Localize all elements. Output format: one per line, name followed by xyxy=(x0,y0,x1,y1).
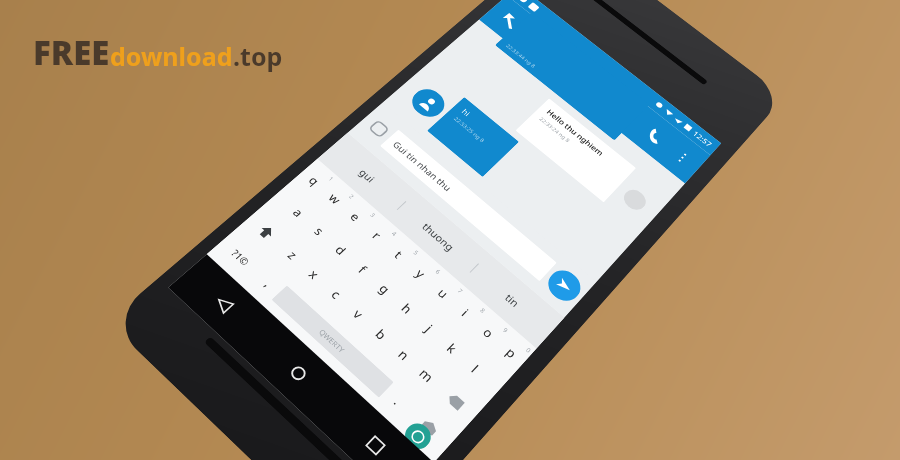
staticText: l xyxy=(468,361,482,376)
button[interactable]: z xyxy=(268,233,316,277)
button[interactable]: u xyxy=(419,271,466,315)
staticText: 22:33:25 ng 8 xyxy=(452,115,486,145)
staticText: 5 xyxy=(411,249,421,258)
staticText: , xyxy=(261,277,276,290)
button[interactable]: m xyxy=(402,351,451,399)
button[interactable]: Home xyxy=(241,320,355,428)
button[interactable]: ?1© xyxy=(209,229,272,286)
staticText: m xyxy=(415,364,437,386)
button[interactable]: Attach xyxy=(359,112,398,146)
staticText: 22:33:24 ng 8 xyxy=(537,116,572,145)
button[interactable]: j xyxy=(405,305,453,351)
staticText: 7 xyxy=(455,287,465,296)
staticText: s xyxy=(311,223,328,238)
staticText: hi xyxy=(459,107,473,118)
button[interactable]: Backspace xyxy=(425,372,486,431)
button[interactable]: l xyxy=(451,345,499,392)
staticText: y xyxy=(412,265,429,281)
staticText: c xyxy=(328,286,345,302)
button[interactable]: t xyxy=(375,233,422,276)
button[interactable]: gui xyxy=(317,133,417,219)
button[interactable]: 22:33:44 ng 8 xyxy=(495,12,650,141)
staticText: FREE xyxy=(33,30,110,75)
button[interactable]: c xyxy=(311,271,360,317)
button[interactable]: Hello thu nghiem xyxy=(515,98,636,202)
staticText: Hello thu nghiem xyxy=(544,107,606,158)
button[interactable]: More options xyxy=(661,138,704,177)
staticText: o xyxy=(479,324,497,341)
button[interactable]: hi xyxy=(427,97,519,177)
button[interactable]: i xyxy=(442,290,489,335)
staticText: r xyxy=(369,228,385,242)
staticText: 12:57 xyxy=(691,129,714,149)
staticText: n xyxy=(394,346,413,364)
button[interactable]: e xyxy=(332,196,379,238)
staticText: e xyxy=(347,209,364,224)
button[interactable]: r xyxy=(353,214,400,257)
staticText: .top xyxy=(233,39,283,73)
staticText: u xyxy=(434,285,452,302)
button[interactable]: Gui tin nhan thu xyxy=(380,129,557,281)
staticText: b xyxy=(372,325,390,343)
staticText: h xyxy=(398,300,416,317)
button[interactable]: a xyxy=(274,191,321,233)
button[interactable]: y xyxy=(397,252,444,295)
button[interactable]: b xyxy=(356,311,405,357)
button[interactable]: Shift xyxy=(237,206,296,258)
button[interactable]: g xyxy=(360,266,408,311)
button[interactable]: x xyxy=(289,252,338,297)
staticText: t xyxy=(391,247,406,262)
button[interactable]: f xyxy=(338,247,386,291)
staticText: 4 xyxy=(389,230,399,239)
button[interactable]: Voice input xyxy=(400,418,436,454)
staticText: download xyxy=(110,39,233,73)
staticText: 8 xyxy=(478,306,487,316)
button[interactable]: Contact avatar xyxy=(406,84,451,122)
staticText: k xyxy=(443,340,460,357)
staticText: p xyxy=(502,344,520,361)
staticText: Gui tin nhan thu xyxy=(390,139,454,193)
staticText: 2 xyxy=(347,193,356,201)
staticText: i xyxy=(458,305,472,319)
button[interactable]: k xyxy=(428,325,476,372)
button[interactable]: , xyxy=(244,261,293,305)
button[interactable]: QWERTY xyxy=(271,285,394,398)
button[interactable]: Back xyxy=(490,5,530,38)
button[interactable]: q xyxy=(291,161,337,201)
button[interactable]: thuong xyxy=(387,192,489,283)
staticText: 9 xyxy=(501,326,510,336)
button[interactable]: w xyxy=(311,178,357,219)
staticText: 3 xyxy=(368,211,377,220)
staticText: x xyxy=(305,266,323,282)
button[interactable]: s xyxy=(295,209,343,252)
staticText: a xyxy=(289,205,307,220)
button[interactable]: Enter xyxy=(396,397,460,460)
button[interactable]: h xyxy=(382,286,430,331)
button[interactable]: . xyxy=(373,376,422,425)
button[interactable]: o xyxy=(464,310,511,355)
button[interactable]: Send xyxy=(542,264,587,307)
button[interactable]: Recent apps xyxy=(318,390,434,460)
staticText: tin xyxy=(502,291,522,310)
staticText: d xyxy=(332,242,350,258)
staticText: f xyxy=(355,262,370,276)
staticText: g xyxy=(375,280,394,297)
staticText: 1 xyxy=(326,175,336,184)
button[interactable]: Call xyxy=(630,114,680,158)
staticText: QWERTY xyxy=(317,327,348,355)
staticText: v xyxy=(349,305,367,322)
staticText: q xyxy=(305,173,323,188)
staticText: 22:33:44 ng 8 xyxy=(504,43,537,70)
button[interactable]: tin xyxy=(460,253,564,348)
button[interactable]: d xyxy=(316,228,364,271)
staticText: 0 xyxy=(524,346,533,356)
staticText: . xyxy=(390,393,405,408)
button[interactable]: v xyxy=(334,291,382,337)
button[interactable]: p xyxy=(487,329,534,376)
button[interactable]: n xyxy=(379,331,428,378)
staticText: gui xyxy=(356,166,378,185)
staticText: ?1© xyxy=(229,247,253,269)
staticText: w xyxy=(325,190,345,207)
button[interactable]: Back xyxy=(168,254,279,356)
staticText: thuong xyxy=(420,220,457,254)
